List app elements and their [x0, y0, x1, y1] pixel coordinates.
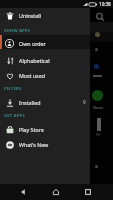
button[interactable]: What's New	[0, 137, 90, 151]
button[interactable]: Play Store	[0, 122, 90, 136]
staticText: Alphabetical	[19, 57, 50, 64]
button[interactable]: Search	[95, 12, 105, 22]
staticText: Play Store	[19, 126, 44, 133]
staticText: Uninstall	[19, 12, 41, 19]
staticText: News	[93, 105, 104, 110]
staticText: 9	[83, 99, 86, 105]
staticText: Most used	[19, 72, 45, 79]
button[interactable]: Alphabetical	[0, 53, 90, 67]
staticText: SHOW APPS	[4, 28, 31, 34]
staticText: Own order	[19, 40, 46, 47]
button[interactable]: Installed	[0, 95, 90, 109]
button[interactable]: Most used	[0, 68, 90, 82]
staticText: Installed	[19, 99, 41, 106]
staticText: GET APPS	[4, 113, 25, 119]
staticText: Fit	[96, 132, 101, 137]
button[interactable]: Own order	[0, 36, 90, 50]
button[interactable]: Uninstall	[0, 8, 90, 22]
staticText: What's New	[19, 141, 49, 148]
staticText: 10:38	[99, 1, 111, 7]
button[interactable]: Recents	[80, 184, 96, 200]
staticText: FILTERS	[4, 86, 22, 92]
button[interactable]: Back	[15, 184, 31, 200]
button[interactable]: Home	[48, 184, 64, 200]
